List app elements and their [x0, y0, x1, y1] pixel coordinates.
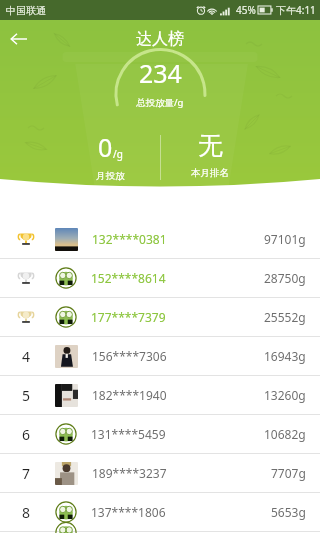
staticText: 13260g: [264, 387, 306, 403]
staticText: 156****7306: [92, 348, 167, 364]
staticText: 4: [22, 347, 31, 366]
staticText: 152****8614: [91, 270, 166, 286]
button[interactable]: Back: [0, 21, 38, 57]
staticText: 6: [22, 425, 31, 444]
staticText: 无: [198, 130, 223, 161]
staticText: 177****7379: [91, 309, 166, 325]
staticText: /g: [113, 147, 123, 161]
staticText: 8: [22, 503, 31, 522]
staticText: 45%: [236, 3, 256, 17]
staticText: 5653g: [271, 504, 306, 520]
button[interactable]: 8: [0, 493, 320, 532]
button[interactable]: 132****0381: [0, 220, 320, 259]
button[interactable]: 177****7379: [0, 298, 320, 337]
staticText: 中国联通: [6, 4, 46, 17]
staticText: 7707g: [271, 465, 306, 481]
staticText: 234: [139, 56, 182, 89]
staticText: 月投放: [96, 170, 125, 182]
staticText: 25552g: [264, 309, 306, 325]
staticText: 97101g: [264, 231, 306, 247]
staticText: 131****5459: [91, 426, 166, 442]
staticText: 达人榜: [136, 29, 184, 49]
button[interactable]: 4: [0, 337, 320, 376]
staticText: 本月排名: [191, 167, 229, 179]
staticText: 132****0381: [92, 231, 167, 247]
staticText: 5: [22, 386, 31, 405]
button[interactable]: 5: [0, 376, 320, 415]
staticText: 下午4:11: [276, 3, 316, 17]
staticText: 0: [98, 130, 113, 164]
staticText: 189****3237: [92, 465, 167, 481]
button[interactable]: 9: [0, 532, 320, 533]
button[interactable]: 6: [0, 415, 320, 454]
staticText: 28750g: [264, 270, 306, 286]
button[interactable]: 7: [0, 454, 320, 493]
staticText: 137****1806: [91, 504, 166, 520]
staticText: 7: [22, 464, 31, 483]
staticText: 10682g: [264, 426, 306, 442]
staticText: 182****1940: [92, 387, 167, 403]
button[interactable]: 152****8614: [0, 259, 320, 298]
staticText: 总投放量/g: [136, 96, 184, 109]
staticText: 16943g: [264, 348, 306, 364]
